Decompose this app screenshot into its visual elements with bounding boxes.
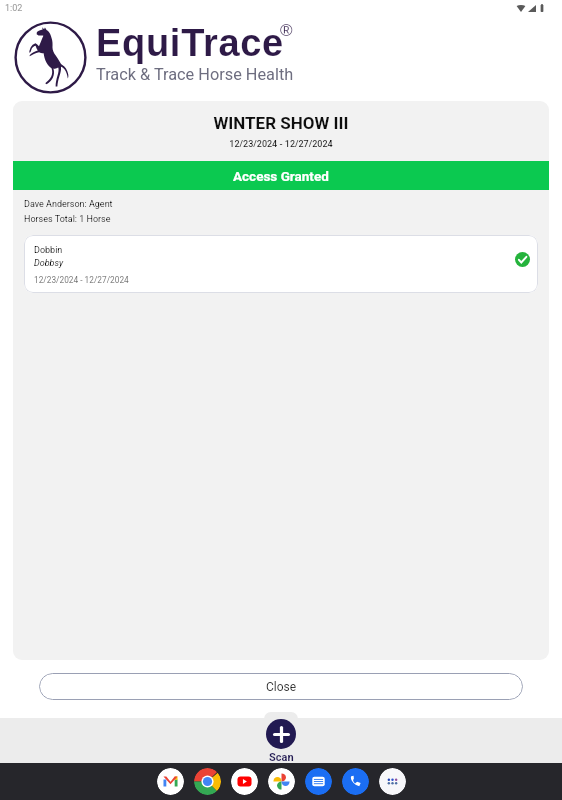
other: Approved [515,252,530,267]
staticText: Access Granted [233,168,329,184]
button[interactable]: YouTube [231,768,258,795]
button[interactable]: Access Granted [13,161,549,190]
button[interactable]: Chrome [194,768,221,795]
button[interactable]: Close [39,673,523,700]
staticText: ® [280,21,293,40]
button[interactable]: Scan [266,719,296,749]
staticText: Track & Trace Horse Health [96,65,294,84]
staticText: Scan [269,751,294,764]
staticText: Dave Anderson: Agent [24,199,113,210]
staticText: 12/23/2024 - 12/27/2024 [34,275,129,285]
button[interactable]: Apps [379,768,406,795]
staticText: Dobbsy [34,258,64,269]
button[interactable]: Dobbin [24,235,538,293]
staticText: WINTER SHOW III [13,113,549,133]
button[interactable]: Gmail [157,768,184,795]
staticText: Dobbin [34,245,63,256]
button[interactable]: Messages [305,768,332,795]
staticText: Close [266,680,297,694]
staticText: 12/23/2024 - 12/27/2024 [13,139,549,150]
button[interactable]: Photos [268,768,295,795]
button[interactable]: Phone [342,768,369,795]
staticText: EquiTrace [96,22,284,64]
staticText: Horses Total: 1 Horse [24,214,111,225]
staticText: 1:02 [5,3,23,14]
